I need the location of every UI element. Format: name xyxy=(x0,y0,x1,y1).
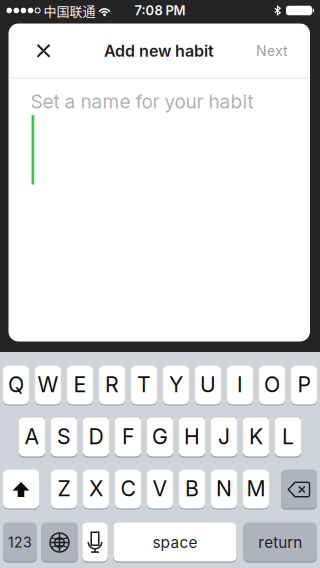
button[interactable]: Dictate xyxy=(82,523,108,562)
staticText: Q xyxy=(8,372,24,397)
staticText: 123 xyxy=(8,534,32,551)
staticText: 7:08 PM xyxy=(134,3,185,18)
button[interactable]: J xyxy=(211,418,237,457)
staticText: P xyxy=(297,372,310,397)
staticText: M xyxy=(246,476,265,501)
button[interactable]: Delete xyxy=(281,470,317,509)
staticText: A xyxy=(24,424,39,449)
button[interactable]: W xyxy=(35,366,61,405)
staticText: N xyxy=(216,476,232,501)
staticText: K xyxy=(249,424,263,449)
staticText: G xyxy=(152,424,168,449)
button[interactable]: space xyxy=(113,523,236,562)
staticText: F xyxy=(122,424,134,449)
staticText: H xyxy=(184,424,200,449)
button[interactable]: K xyxy=(243,418,269,457)
staticText: W xyxy=(37,372,58,397)
staticText: 中国联通 xyxy=(43,1,95,20)
staticText: Next xyxy=(256,42,288,59)
staticText: E xyxy=(73,372,86,397)
button[interactable]: Z xyxy=(51,470,77,509)
staticText: C xyxy=(120,476,135,501)
staticText: Set a name for your habit xyxy=(30,90,253,113)
button[interactable]: M xyxy=(243,470,269,509)
staticText: J xyxy=(218,424,230,449)
button[interactable]: U xyxy=(195,366,221,405)
staticText: O xyxy=(264,372,280,397)
button[interactable]: V xyxy=(147,470,173,509)
button[interactable]: Q xyxy=(3,366,29,405)
button[interactable]: I xyxy=(227,366,253,405)
button[interactable]: 123 xyxy=(3,523,37,562)
staticText: B xyxy=(185,476,199,501)
button[interactable]: N xyxy=(211,470,237,509)
button[interactable]: P xyxy=(291,366,317,405)
staticText: T xyxy=(137,372,151,397)
button[interactable]: A xyxy=(19,418,45,457)
button[interactable]: G xyxy=(147,418,173,457)
staticText: Add new habit xyxy=(104,41,214,61)
button[interactable]: B xyxy=(179,470,205,509)
button[interactable]: Shift xyxy=(3,470,39,509)
button[interactable]: Next keyboard xyxy=(41,523,78,562)
staticText: X xyxy=(89,476,103,501)
button[interactable]: H xyxy=(179,418,205,457)
staticText: L xyxy=(282,424,294,449)
button[interactable]: C xyxy=(115,470,141,509)
staticText: U xyxy=(200,372,216,397)
button[interactable]: L xyxy=(275,418,301,457)
staticText: Y xyxy=(169,372,183,397)
button[interactable]: F xyxy=(115,418,141,457)
button[interactable]: D xyxy=(83,418,109,457)
staticText: V xyxy=(152,476,167,501)
button[interactable]: S xyxy=(51,418,77,457)
button[interactable]: T xyxy=(131,366,157,405)
staticText: S xyxy=(57,424,71,449)
staticText: space xyxy=(152,533,197,552)
button[interactable]: return xyxy=(243,523,317,562)
button[interactable]: O xyxy=(259,366,285,405)
button[interactable]: Next xyxy=(256,42,288,59)
staticText: R xyxy=(105,372,119,397)
button[interactable]: E xyxy=(67,366,93,405)
staticText: I xyxy=(237,372,243,397)
button[interactable]: Close xyxy=(33,41,53,61)
staticText: Z xyxy=(57,476,70,501)
staticText: D xyxy=(88,424,103,449)
button[interactable]: R xyxy=(99,366,125,405)
button[interactable]: X xyxy=(83,470,109,509)
button[interactable]: Y xyxy=(163,366,189,405)
staticText: return xyxy=(258,533,302,552)
